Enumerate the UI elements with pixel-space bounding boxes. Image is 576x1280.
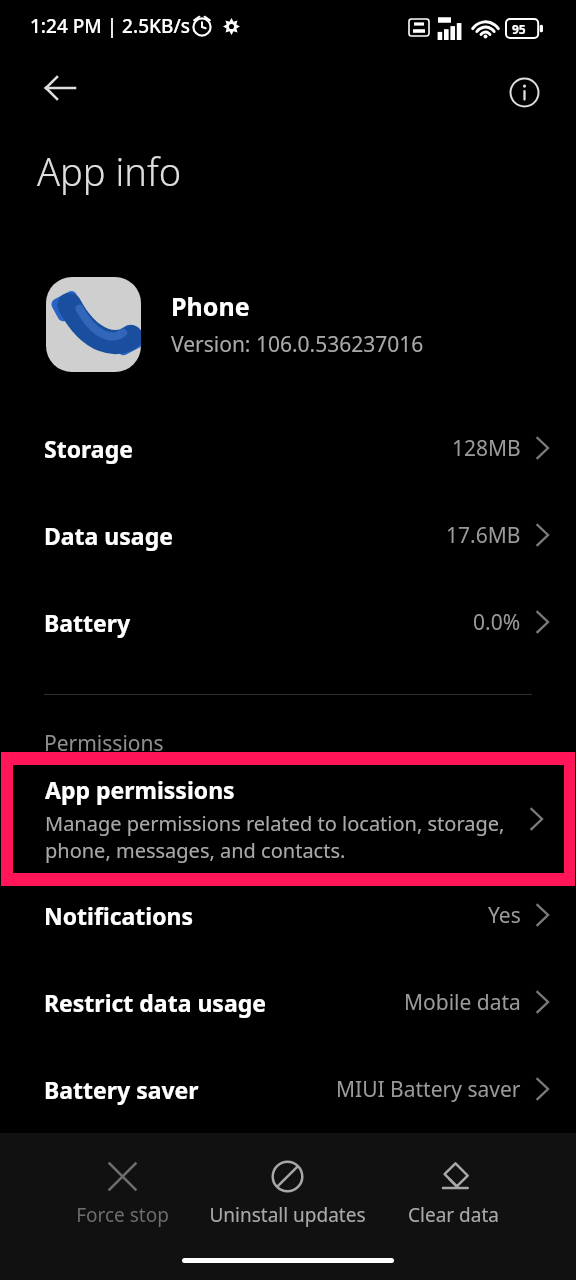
button[interactable]: Battery saver [0,1058,576,1120]
staticText: 1:24 PM | 2.5KB/s [30,13,190,39]
staticText: Battery saver [44,1074,199,1105]
staticText: Battery [44,607,131,638]
staticText: Storage [44,433,133,464]
staticText: Manage permissions related to location, … [45,810,505,864]
button[interactable]: Force stop [48,1156,196,1232]
staticText: Notifications [44,900,194,931]
staticText: Force stop [76,1202,169,1228]
button[interactable]: Clear data [378,1156,528,1232]
button[interactable]: Data usage [0,504,576,566]
button[interactable]: Uninstall updates [196,1156,378,1232]
button[interactable]: App details info [496,64,552,120]
button[interactable]: Storage [0,417,576,479]
button[interactable]: Phone [0,268,576,380]
staticText: Permissions [44,729,164,758]
button[interactable]: App permissions [13,765,564,873]
staticText: Clear data [408,1202,499,1228]
staticText: Uninstall updates [209,1202,366,1228]
staticText: Data usage [44,520,173,551]
staticText: Restrict data usage [44,987,266,1018]
staticText: App info [37,145,182,197]
staticText: MIUI Battery saver [336,1075,521,1104]
staticText: Phone [171,289,250,323]
button[interactable]: Battery [0,591,576,653]
staticText: 128MB [452,434,521,463]
staticText: 95 [512,21,526,37]
staticText: Yes [488,901,521,930]
button[interactable]: Notifications [0,884,576,946]
staticText: Version: 106.0.536237016 [171,330,424,359]
button[interactable]: Back [30,58,90,118]
button[interactable]: Restrict data usage [0,971,576,1033]
staticText: 0.0% [473,608,521,637]
staticText: App permissions [45,774,235,805]
staticText: Mobile data [404,988,521,1017]
staticText: 17.6MB [446,521,521,550]
